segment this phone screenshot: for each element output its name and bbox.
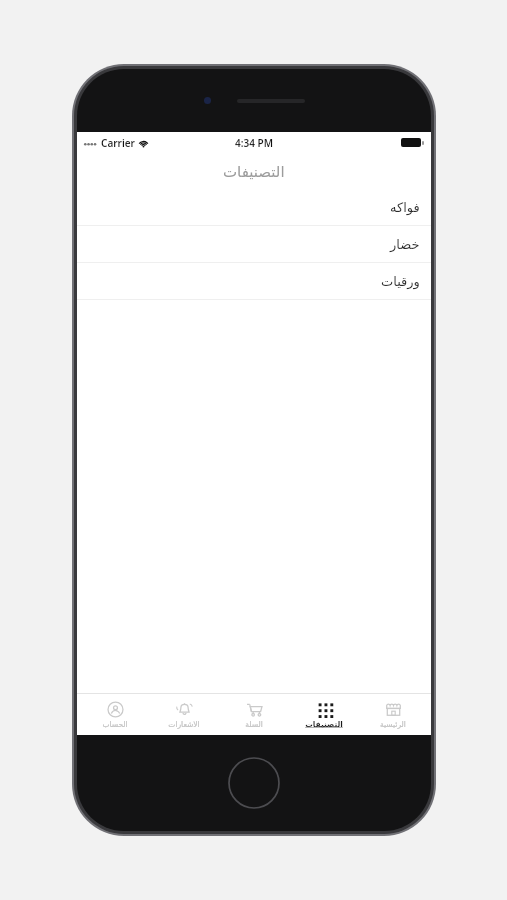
staticText: السلة: [245, 720, 263, 729]
staticText: خضار: [390, 237, 420, 252]
staticText: ورقيات: [381, 274, 420, 289]
staticText: 4:34 PM: [235, 136, 273, 150]
button[interactable]: الاشعارات: [152, 694, 216, 735]
button[interactable]: ورقيات: [77, 263, 431, 300]
staticText: الحساب: [102, 720, 128, 729]
staticText: الاشعارات: [168, 720, 200, 729]
button[interactable]: التصنيفات: [292, 694, 356, 735]
button[interactable]: الحساب: [83, 694, 147, 735]
button[interactable]: الرئيسية: [361, 694, 425, 735]
staticText: التصنيفات: [305, 720, 343, 729]
staticText: Carrier: [101, 136, 135, 150]
button[interactable]: السلة: [222, 694, 286, 735]
staticText: التصنيفات: [223, 163, 285, 180]
button[interactable]: خضار: [77, 226, 431, 263]
staticText: فواكه: [390, 200, 420, 215]
button[interactable]: فواكه: [77, 189, 431, 226]
staticText: الرئيسية: [380, 720, 406, 729]
